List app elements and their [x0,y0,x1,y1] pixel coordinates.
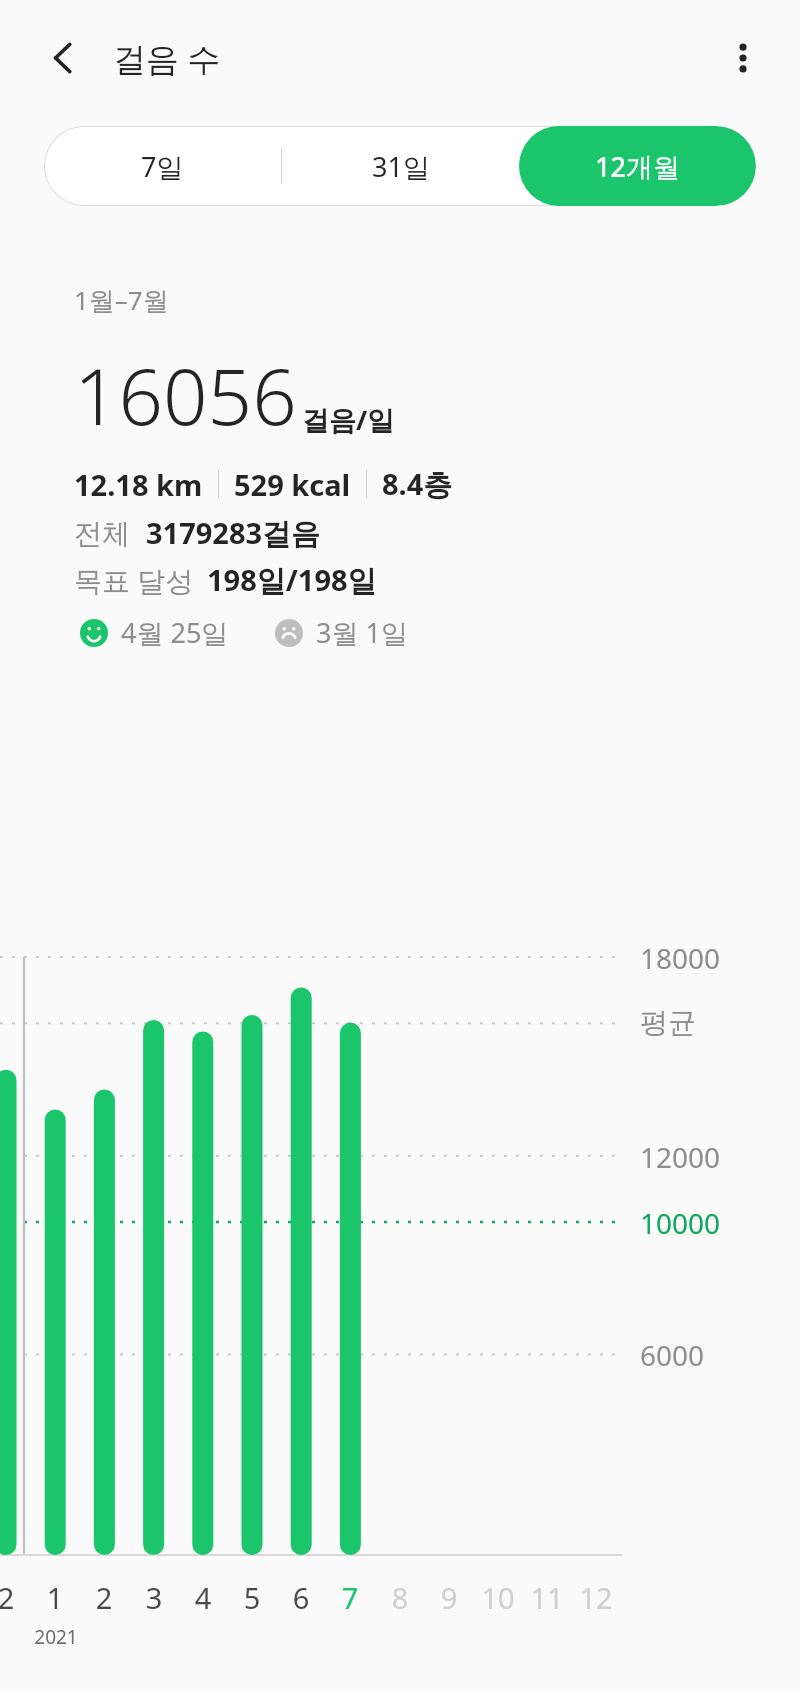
staticText: 529 kcal [234,465,351,504]
staticText: 10 [476,1578,520,1617]
staticText: 6 [279,1578,323,1617]
staticText: 4 [181,1578,225,1617]
staticText: 16056 [74,342,297,448]
button[interactable]: More options [712,27,774,89]
staticText: 12개월 [595,148,680,185]
staticText: 7일 [141,148,184,185]
staticText: 9 [427,1578,471,1617]
staticText: 5 [230,1578,274,1617]
staticText: 1 [33,1578,77,1617]
staticText: 평균 [640,1005,696,1040]
staticText: 31일 [372,148,430,185]
staticText: 198일/198일 [207,560,377,600]
staticText: 18000 [640,939,721,977]
staticText: 목표 달성 [74,561,194,599]
staticText: 11 [525,1578,569,1617]
staticText: 6000 [640,1336,705,1374]
staticText: 2 [0,1578,28,1617]
staticText: 3월 1일 [316,614,408,651]
staticText: 3179283걸음 [146,513,321,553]
staticText: 10000 [640,1204,721,1242]
staticText: 1월–7월 [74,282,169,318]
button[interactable]: Back [32,27,94,89]
staticText: 8 [378,1578,422,1617]
staticText: 12 [574,1578,618,1617]
staticText: 2021 [33,1624,79,1650]
staticText: 7 [328,1578,372,1617]
staticText: 전체 [74,516,130,551]
button[interactable]: 31일 [282,126,519,206]
staticText: 3 [132,1578,176,1617]
staticText: 8.4층 [382,464,453,504]
staticText: 12000 [640,1138,721,1176]
staticText: 2 [82,1578,126,1617]
staticText: 4월 25일 [121,614,229,651]
button[interactable]: 12개월 [519,126,756,206]
staticText: 12.18 km [74,465,203,504]
staticText: 걸음/일 [302,401,395,438]
button[interactable]: 7일 [44,126,281,206]
staticText: 걸음 수 [113,36,221,81]
